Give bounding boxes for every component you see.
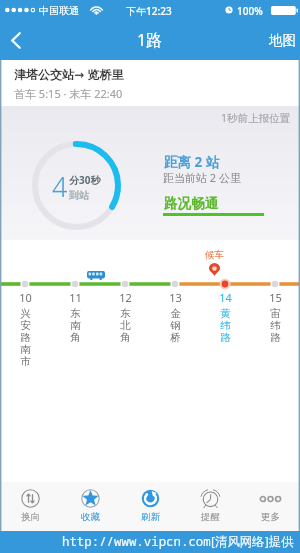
- button[interactable]: 11: [50, 290, 100, 344]
- staticText: 4: [52, 168, 68, 205]
- staticText: 100%: [237, 4, 263, 18]
- button[interactable]: 13: [150, 290, 200, 344]
- button[interactable]: 提醒: [180, 482, 240, 531]
- staticText: 东 南 角: [70, 307, 81, 344]
- staticText: 东 北 角: [120, 307, 131, 344]
- staticText: 提醒: [201, 511, 220, 523]
- staticText: 到站: [69, 189, 89, 202]
- staticText: http://www.vipcn.com: [62, 533, 211, 550]
- button[interactable]: 15: [250, 290, 300, 344]
- staticText: 金 钢 桥: [170, 307, 181, 344]
- staticText: 15: [269, 290, 282, 305]
- staticText: 地图: [269, 32, 296, 49]
- button[interactable]: 地图: [257, 20, 300, 60]
- staticText: 候车: [205, 249, 224, 261]
- staticText: 13: [169, 290, 182, 305]
- staticText: 14: [219, 290, 232, 305]
- staticText: 下午12:23: [126, 4, 172, 18]
- staticText: 首车 5:15 · 末车 22:40: [14, 86, 123, 101]
- staticText: 1秒前上报位置: [221, 111, 291, 125]
- staticText: 距当前站 2 公里: [163, 170, 242, 185]
- button[interactable]: 更多: [240, 482, 300, 531]
- staticText: 路况畅通: [164, 195, 218, 212]
- staticText: 10: [19, 290, 32, 305]
- button[interactable]: Back: [0, 20, 36, 60]
- staticText: 1路: [137, 29, 163, 51]
- staticText: 距离 2 站: [164, 153, 220, 171]
- staticText: 兴 安 路 南 市: [20, 307, 31, 368]
- staticText: 分30秒: [69, 173, 101, 187]
- button[interactable]: 换向: [0, 482, 60, 531]
- button[interactable]: 收藏: [60, 482, 120, 531]
- staticText: 11: [69, 290, 82, 305]
- staticText: 刷新: [141, 511, 160, 523]
- staticText: 收藏: [81, 511, 100, 523]
- staticText: 宙 纬 路: [270, 307, 281, 344]
- staticText: 中国联通: [39, 4, 79, 17]
- staticText: 津塔公交站→ 览桥里: [14, 66, 124, 82]
- button[interactable]: 刷新: [120, 482, 180, 531]
- staticText: 换向: [21, 511, 40, 523]
- button[interactable]: 10: [0, 290, 50, 368]
- button[interactable]: 12: [100, 290, 150, 344]
- button[interactable]: 14: [200, 290, 250, 344]
- staticText: 更多: [261, 511, 280, 523]
- staticText: 黄 纬 路: [220, 307, 231, 344]
- staticText: 12: [119, 290, 132, 305]
- staticText: [清风网络]提供: [211, 533, 294, 550]
